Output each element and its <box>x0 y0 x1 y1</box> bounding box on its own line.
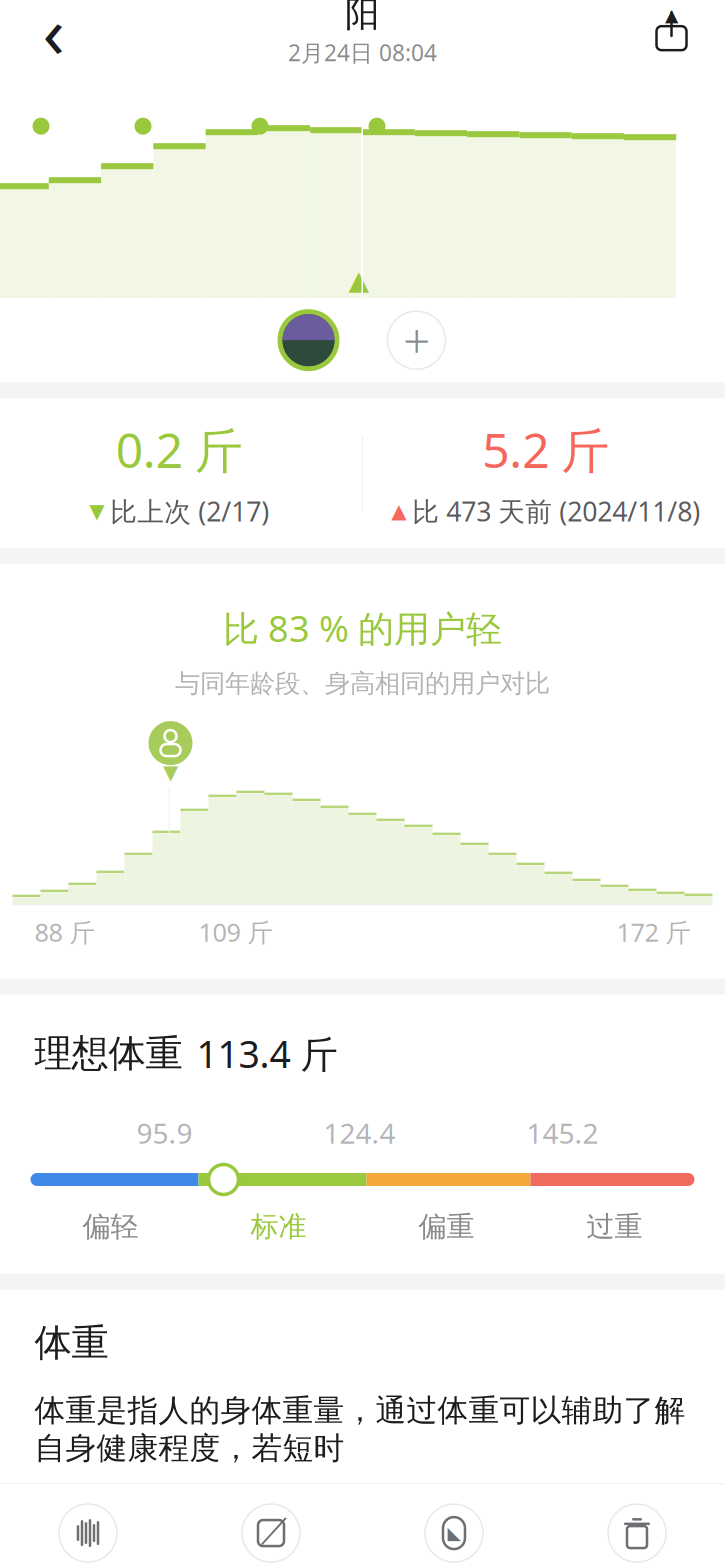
staticText: 比上次 (2/17) <box>110 493 269 529</box>
button[interactable]: Back <box>18 0 88 62</box>
staticText: 145.2 <box>526 1114 598 1151</box>
button[interactable]: 删除 <box>545 1502 725 1568</box>
staticText: ／ <box>259 1509 291 1549</box>
button[interactable]: Add user <box>385 309 447 371</box>
button[interactable]: User profile <box>277 309 339 371</box>
staticText: 5.2 斤 <box>482 418 609 481</box>
staticText: 过重 <box>586 1209 642 1244</box>
staticText: 理想体重 <box>34 1031 182 1076</box>
staticText: 偏轻 <box>82 1209 138 1244</box>
button[interactable]: ◣ <box>362 1502 545 1568</box>
staticText: 95.9 <box>136 1114 192 1151</box>
staticText: ▼ <box>163 761 178 784</box>
staticText: 与同年龄段、身高相同的用户对比 <box>175 668 550 699</box>
staticText: 88 斤 <box>34 915 94 949</box>
button[interactable]: 缩小 <box>0 1502 179 1568</box>
staticText: ‹ <box>42 0 64 78</box>
staticText: 172 斤 <box>616 915 690 949</box>
staticText: 比 83 % 的用户轻 <box>223 604 502 652</box>
staticText: ▼ <box>89 500 104 522</box>
staticText: 124.4 <box>323 1114 395 1151</box>
staticText: 比 473 天前 (2024/11/8) <box>412 493 700 529</box>
staticText: + <box>403 308 430 372</box>
staticText: 阳 <box>345 0 380 35</box>
staticText: ▲ <box>391 500 406 522</box>
staticText: 体重 <box>34 1320 108 1366</box>
button[interactable]: ／ <box>179 1502 362 1568</box>
staticText: 2月24日 08:04 <box>288 37 437 67</box>
staticText: 体重是指人的身体重量，通过体重可以辅助了解自身健康程度，若短时 <box>34 1392 685 1467</box>
staticText: ▲ <box>348 265 369 295</box>
staticText: 偏重 <box>418 1209 474 1244</box>
staticText: 标准 <box>250 1209 306 1244</box>
button[interactable]: Share <box>636 0 706 62</box>
staticText: ◣ <box>447 1523 460 1543</box>
staticText: ▲ <box>665 5 678 25</box>
staticText: 0.2 斤 <box>116 418 243 481</box>
staticText: 113.4 斤 <box>196 1029 337 1078</box>
staticText: 109 斤 <box>198 915 272 949</box>
